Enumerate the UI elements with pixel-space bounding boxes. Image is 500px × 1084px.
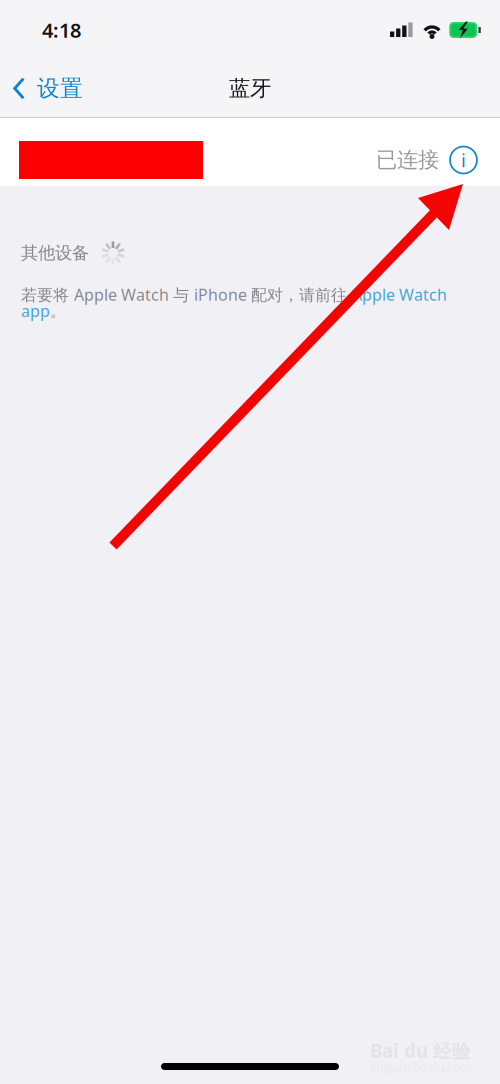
staticText: Apple Watch	[352, 284, 447, 305]
staticText: 。	[50, 301, 66, 321]
button[interactable]: 已连接	[0, 118, 500, 186]
button[interactable]: 设置	[0, 60, 93, 117]
staticText: Bai du 经验	[370, 1038, 471, 1063]
staticText: app	[21, 300, 50, 321]
staticText: 4:18	[42, 17, 81, 43]
staticText: 若要将 Apple Watch 与 iPhone 配对，请前往	[21, 284, 352, 305]
staticText: 设置	[37, 75, 83, 102]
staticText: i	[461, 148, 466, 172]
staticText: 已连接	[376, 147, 439, 173]
staticText: 蓝牙	[229, 75, 271, 102]
staticText: 其他设备	[21, 242, 89, 264]
